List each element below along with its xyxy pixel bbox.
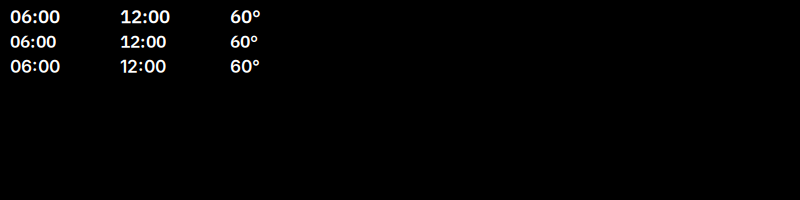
- staticText: 06:00: [10, 4, 60, 28]
- staticText: 06:00: [10, 56, 60, 77]
- staticText: 60°: [230, 56, 260, 77]
- staticText: 12:00: [120, 56, 166, 77]
- staticText: 06:00: [10, 30, 56, 52]
- staticText: 60°: [230, 4, 261, 28]
- staticText: 12:00: [120, 30, 166, 52]
- staticText: 12:00: [120, 4, 170, 28]
- staticText: 60°: [230, 30, 258, 52]
